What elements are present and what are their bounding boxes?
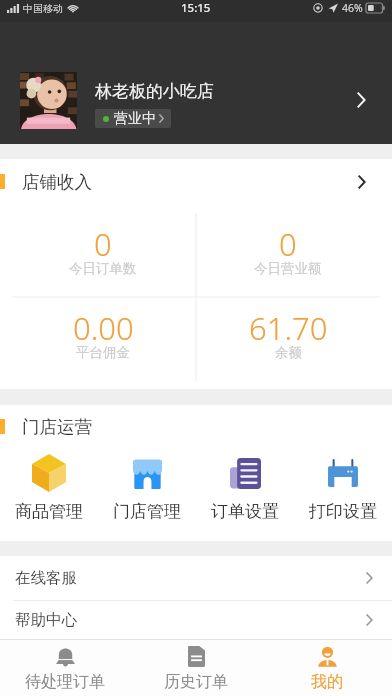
staticText: 46% — [342, 1, 363, 15]
staticText: 营业中 — [114, 110, 156, 128]
button[interactable]: 帮助中心 — [0, 601, 392, 639]
staticText: 历史订单 — [164, 672, 228, 692]
staticText: 中国移动 — [23, 2, 63, 15]
button[interactable]: 在线客服 — [0, 556, 392, 600]
staticText: 今日订单数 — [69, 260, 137, 277]
staticText: 61.70 — [249, 307, 328, 349]
button[interactable]: 营业中 — [95, 109, 171, 128]
staticText: 0 — [94, 223, 112, 265]
button[interactable]: 待处理订单 — [0, 640, 130, 696]
button[interactable]: 61.70 — [196, 297, 392, 381]
staticText: 余额 — [275, 344, 302, 361]
staticText: 我的 — [311, 672, 343, 692]
staticText: 门店运营 — [22, 416, 92, 438]
button[interactable]: 打印设置 — [294, 453, 392, 522]
staticText: 15:15 — [181, 0, 211, 16]
staticText: 商品管理 — [15, 501, 83, 522]
staticText: 平台佣金 — [76, 344, 130, 361]
staticText: 0.00 — [73, 307, 134, 349]
staticText: 林老板的小吃店 — [95, 81, 214, 102]
staticText: 订单设置 — [211, 501, 279, 522]
button[interactable]: 0.00 — [0, 297, 196, 381]
button[interactable]: 0 — [0, 213, 196, 297]
staticText: 帮助中心 — [15, 610, 77, 630]
button[interactable]: 订单设置 — [196, 453, 294, 522]
staticText: 在线客服 — [15, 568, 77, 588]
button[interactable]: 历史订单 — [130, 640, 261, 696]
button[interactable]: 店铺收入 — [0, 166, 392, 197]
staticText: 门店管理 — [113, 501, 181, 522]
button[interactable]: 门店管理 — [98, 453, 196, 522]
staticText: 0 — [279, 223, 297, 265]
button[interactable]: 0 — [196, 213, 392, 297]
button[interactable]: 林老板的小吃店 — [0, 22, 392, 144]
button[interactable]: 商品管理 — [0, 453, 98, 522]
button[interactable]: 我的 — [261, 640, 392, 696]
staticText: 今日营业额 — [254, 260, 322, 277]
staticText: 待处理订单 — [25, 672, 105, 692]
staticText: 打印设置 — [309, 501, 377, 522]
staticText: 店铺收入 — [22, 171, 92, 193]
